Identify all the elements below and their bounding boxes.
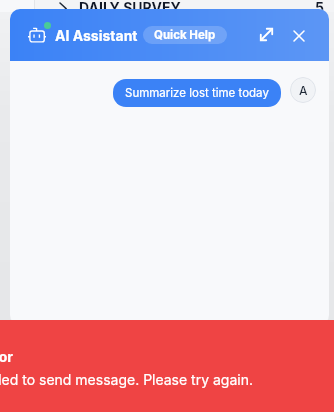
staticText: A <box>299 83 308 98</box>
staticText: Error <box>0 348 13 365</box>
staticText: Failed to send message. Please try again… <box>0 371 253 388</box>
staticText: Summarize lost time today <box>125 86 269 100</box>
button[interactable]: Quick Help <box>143 26 227 44</box>
button[interactable]: Assistant online <box>26 20 50 44</box>
button[interactable]: Summarize lost time today <box>113 79 281 107</box>
staticText: 5 <box>315 0 324 11</box>
button[interactable]: Close <box>285 22 312 49</box>
staticText: AI Assistant <box>55 27 138 44</box>
staticText: DAILY SURVEY <box>79 0 181 11</box>
staticText: Quick Help <box>154 28 216 42</box>
button[interactable]: DAILY SURVEY <box>0 0 334 12</box>
button[interactable]: Expand <box>253 21 280 48</box>
